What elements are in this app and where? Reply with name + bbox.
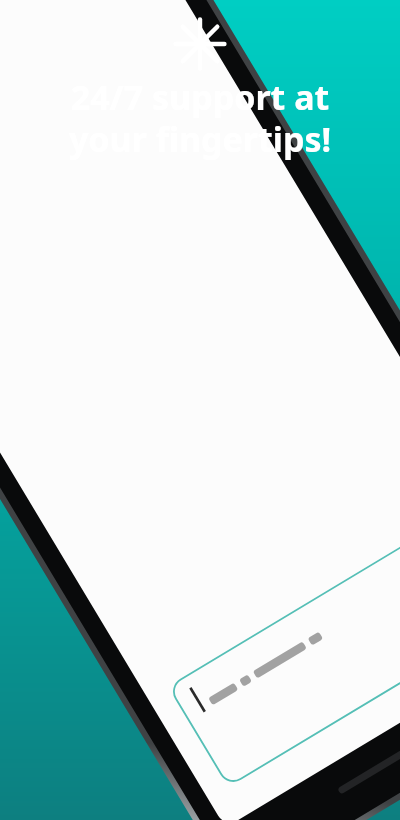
staticText: 24/7 support at your fingertips! xyxy=(0,74,400,162)
